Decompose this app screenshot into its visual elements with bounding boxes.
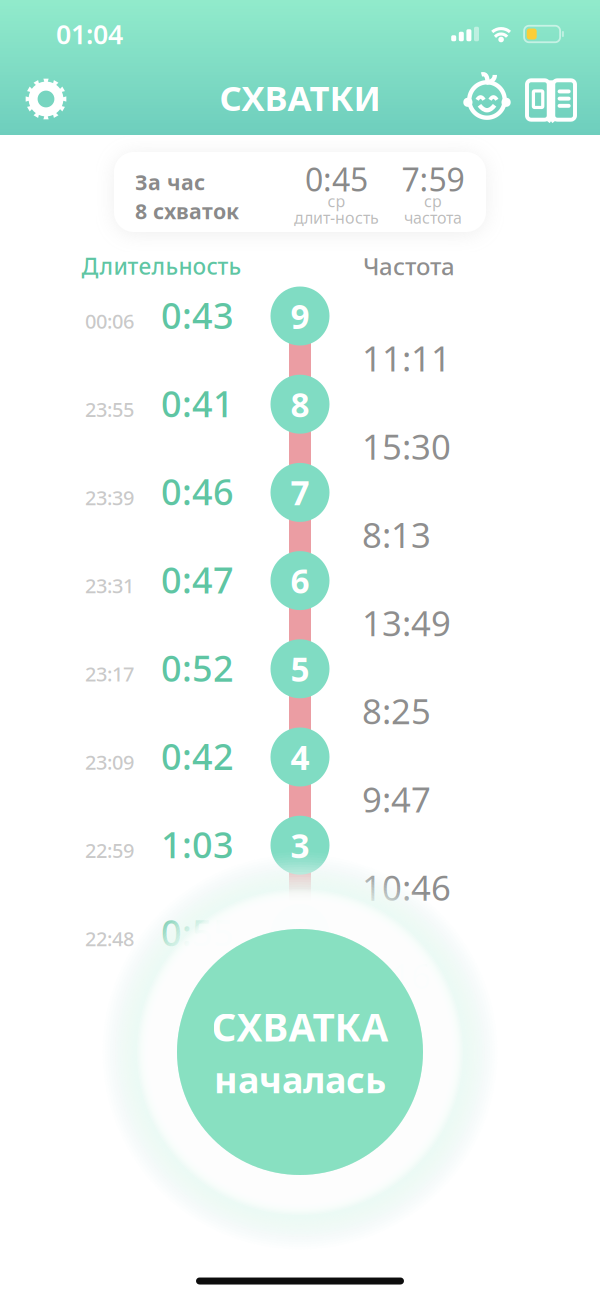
button[interactable]: Baby: [459, 72, 515, 128]
staticText: ср: [327, 190, 345, 212]
staticText: 4: [290, 735, 309, 779]
staticText: 8:25: [362, 688, 431, 734]
staticText: 13:49: [362, 600, 451, 646]
staticText: 23:09: [85, 749, 134, 775]
staticText: частота: [404, 207, 462, 228]
staticText: началась: [214, 1055, 386, 1103]
staticText: 23:31: [85, 572, 134, 599]
staticText: 9: [290, 294, 309, 338]
staticText: 0:42: [161, 732, 234, 780]
staticText: 00:06: [85, 308, 134, 334]
staticText: длит-ность: [294, 207, 379, 228]
button[interactable]: СХВАТКА: [100, 852, 500, 1252]
staticText: 8:13: [362, 511, 431, 557]
staticText: СХВАТКИ: [219, 74, 380, 120]
staticText: 0:41: [161, 379, 234, 427]
staticText: ср: [424, 190, 442, 212]
staticText: 23:17: [85, 660, 134, 687]
staticText: 10:46: [362, 864, 451, 910]
button[interactable]: Settings: [18, 71, 74, 127]
staticText: Частота: [363, 250, 455, 282]
staticText: 6:16: [362, 952, 431, 998]
staticText: 6: [290, 558, 309, 603]
staticText: 0:45: [305, 158, 368, 200]
staticText: 2: [290, 911, 309, 956]
staticText: 5: [290, 647, 309, 691]
staticText: 0:43: [161, 291, 234, 339]
staticText: 0:47: [161, 556, 234, 603]
staticText: 22:48: [85, 925, 134, 952]
staticText: 11:11: [362, 335, 451, 381]
staticText: 3: [290, 823, 309, 867]
staticText: 8 схваток: [135, 197, 239, 225]
staticText: Длительность: [81, 251, 241, 281]
button[interactable]: Guide: [523, 72, 579, 128]
staticText: 22:59: [85, 837, 134, 863]
staticText: 7:59: [401, 158, 464, 200]
staticText: 23:39: [85, 484, 134, 511]
staticText: 0:52: [161, 644, 234, 692]
staticText: 15:30: [362, 423, 451, 469]
staticText: 01:04: [56, 16, 123, 52]
staticText: 8: [290, 382, 309, 426]
staticText: 9:47: [362, 776, 431, 822]
staticText: СХВАТКА: [211, 1001, 388, 1052]
staticText: 0:55: [161, 908, 234, 956]
staticText: 0:46: [161, 467, 234, 515]
staticText: За час: [135, 168, 205, 196]
staticText: 1:03: [161, 820, 234, 868]
staticText: 7: [290, 470, 309, 515]
staticText: 23:55: [85, 396, 134, 422]
